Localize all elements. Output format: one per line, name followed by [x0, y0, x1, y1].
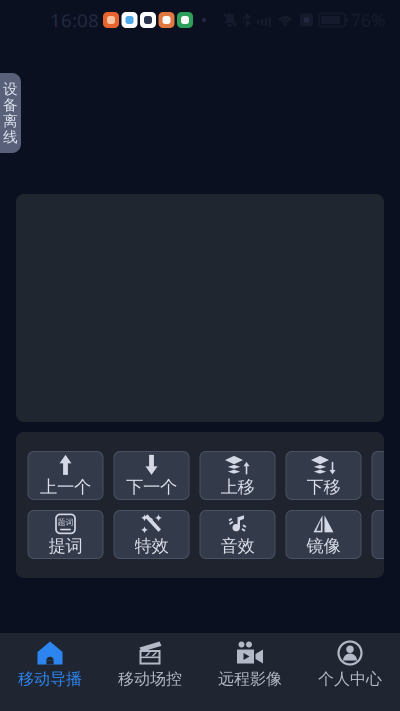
staticText: 远程影像 — [218, 669, 282, 689]
button[interactable]: 音效 — [200, 510, 275, 558]
staticText: 76% — [351, 8, 385, 31]
button[interactable]: 美颜 — [372, 510, 400, 558]
button[interactable]: 下移 — [286, 451, 361, 499]
staticText: 移动导播 — [18, 669, 82, 689]
button[interactable]: 设备离线 — [0, 73, 21, 153]
staticText: 上一个 — [40, 476, 91, 498]
button[interactable]: 题词 — [28, 510, 103, 558]
staticText: 离 — [3, 112, 18, 130]
button[interactable]: 上移 — [200, 451, 275, 499]
button[interactable]: 切换 — [372, 451, 400, 499]
staticText: 设 — [3, 80, 18, 98]
button[interactable]: 移动导播 — [0, 633, 100, 711]
staticText: 备 — [3, 96, 18, 114]
staticText: 提词 — [48, 535, 82, 557]
staticText: 个人中心 — [318, 669, 382, 689]
button[interactable]: 下一个 — [114, 451, 189, 499]
staticText: 下移 — [306, 476, 340, 498]
staticText: 镜像 — [306, 535, 340, 557]
staticText: 特效 — [134, 535, 168, 557]
button[interactable]: 远程影像 — [200, 633, 300, 711]
staticText: 题词 — [57, 517, 73, 527]
staticText: 音效 — [220, 535, 254, 557]
staticText: 16:08 — [50, 8, 99, 32]
button[interactable]: 个人中心 — [300, 633, 400, 711]
button[interactable]: 镜像 — [286, 510, 361, 558]
button[interactable]: 上一个 — [28, 451, 103, 499]
staticText: 上移 — [220, 476, 254, 498]
button[interactable]: 移动场控 — [100, 633, 200, 711]
staticText: 移动场控 — [118, 669, 182, 689]
staticText: 下一个 — [126, 476, 177, 498]
button[interactable]: 特效 — [114, 510, 189, 558]
staticText: 线 — [3, 128, 18, 146]
